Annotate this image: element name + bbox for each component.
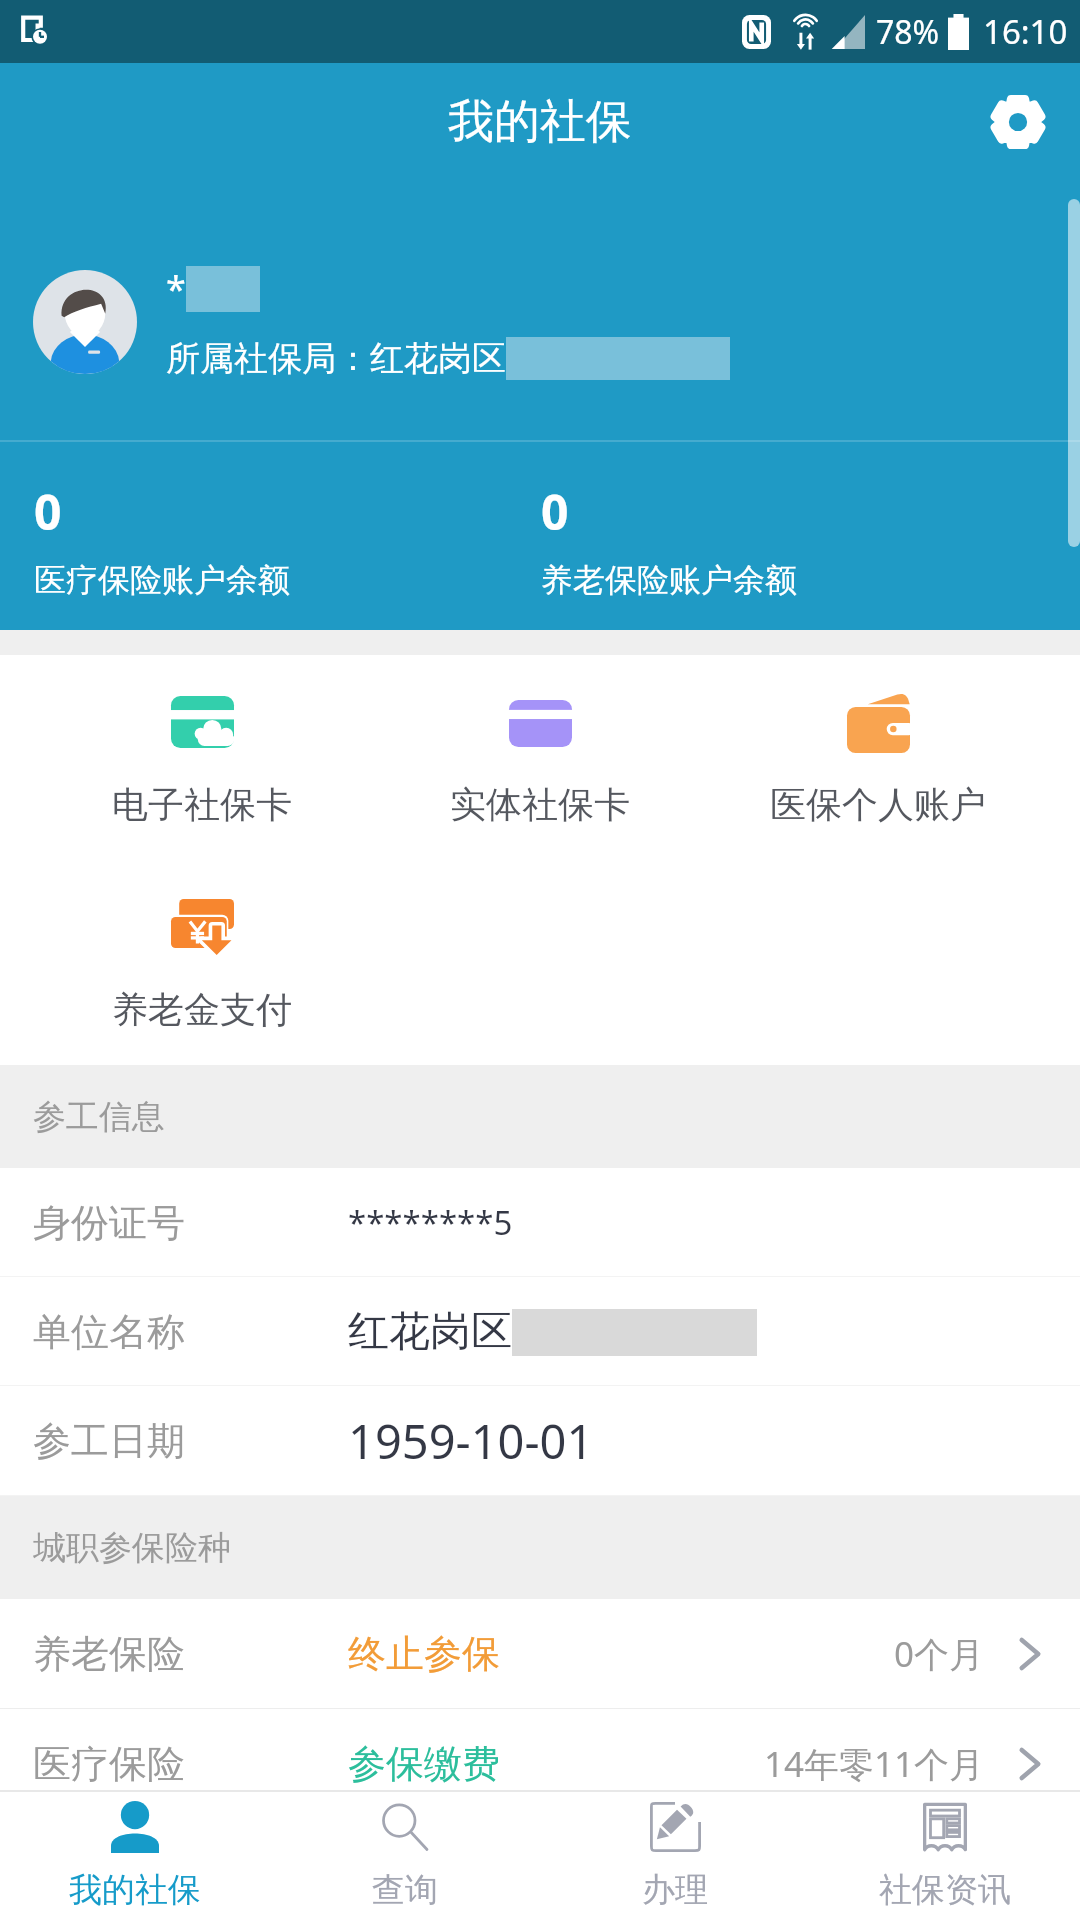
staticText: 医疗保险账户余额 <box>34 560 290 600</box>
button[interactable]: 身份证号 <box>0 1168 1080 1277</box>
button[interactable]: 电子社保卡 <box>33 655 371 860</box>
button[interactable]: 实体社保卡 <box>371 655 709 860</box>
staticText: 单位名称 <box>33 1308 348 1356</box>
button[interactable]: 单位名称 <box>0 1277 1080 1386</box>
staticText: 我的社保 <box>448 93 632 151</box>
button[interactable]: 养老金支付 <box>33 860 371 1065</box>
staticText: 78% <box>876 10 940 54</box>
staticText: ********5 <box>348 1200 513 1245</box>
staticText: 红花岗区 <box>348 1306 512 1358</box>
staticText: 社保资讯 <box>879 1869 1011 1911</box>
staticText: 终止参保 <box>348 1630 500 1678</box>
staticText: 0个月 <box>894 1630 985 1678</box>
button[interactable]: 办理 <box>540 1792 810 1920</box>
staticText: 参工信息 <box>33 1096 165 1138</box>
button[interactable]: 医保个人账户 <box>709 655 1047 860</box>
staticText: 14年零11个月 <box>764 1740 985 1788</box>
staticText: 16:10 <box>983 9 1068 54</box>
staticText: 1959-10-01 <box>348 1409 594 1473</box>
staticText: 0 <box>34 479 62 544</box>
button[interactable]: 我的社保 <box>0 1792 270 1920</box>
staticText: 实体社保卡 <box>450 782 630 827</box>
staticText: 办理 <box>642 1869 708 1911</box>
staticText: 养老保险账户余额 <box>541 560 797 600</box>
staticText: 0 <box>541 479 569 544</box>
staticText: 养老保险 <box>33 1630 348 1678</box>
staticText: 养老金支付 <box>112 987 292 1032</box>
button[interactable]: 查询 <box>270 1792 540 1920</box>
staticText: 我的社保 <box>69 1869 201 1911</box>
button[interactable]: 医疗保险 <box>0 1709 1080 1819</box>
staticText: 城职参保险种 <box>33 1527 231 1569</box>
staticText: 查询 <box>372 1869 438 1911</box>
staticText: 身份证号 <box>33 1199 348 1247</box>
staticText: 电子社保卡 <box>112 782 292 827</box>
staticText: 所属社保局：红花岗区 <box>166 337 506 380</box>
staticText: 参工日期 <box>33 1417 348 1465</box>
button[interactable]: 参工日期 <box>0 1386 1080 1496</box>
button[interactable]: 设置 Settings <box>972 76 1064 168</box>
button[interactable]: 社保资讯 <box>810 1792 1080 1920</box>
button[interactable]: 养老保险 <box>0 1599 1080 1709</box>
staticText: 医保个人账户 <box>770 782 986 827</box>
staticText: * <box>166 264 186 313</box>
staticText: 参保缴费 <box>348 1740 500 1788</box>
staticText: 医疗保险 <box>33 1740 348 1788</box>
